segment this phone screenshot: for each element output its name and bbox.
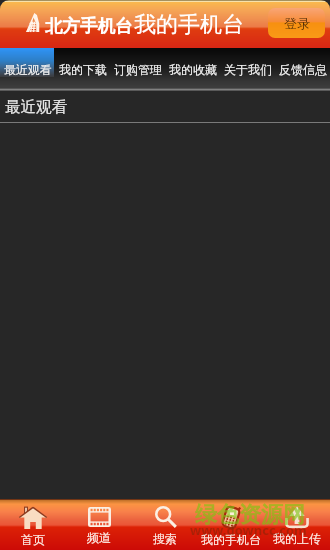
staticText: 订购管理 — [114, 62, 162, 77]
button[interactable]: 我的收藏 — [165, 48, 220, 91]
staticText: 反馈信息 — [279, 62, 327, 77]
button[interactable]: 订购管理 — [110, 48, 165, 91]
staticText: 频道 — [87, 530, 111, 545]
button[interactable]: 登录 — [268, 8, 325, 38]
staticText: 绿色资源网 — [195, 501, 305, 529]
button[interactable]: 我的下载 — [55, 48, 110, 91]
staticText: 最近观看 — [4, 62, 52, 77]
button[interactable]: 首页 — [0, 499, 66, 550]
staticText: www.downcc.com — [190, 521, 307, 539]
staticText: 我的收藏 — [169, 62, 217, 77]
other: 我的上传 — [285, 506, 309, 528]
staticText: 关于我们 — [224, 62, 272, 77]
button[interactable]: 我的上传 — [264, 499, 330, 550]
other: 频道 — [88, 507, 111, 527]
staticText: 搜索 — [153, 531, 177, 546]
other: 首页 — [19, 506, 47, 529]
staticText: 我的手机台 — [134, 11, 244, 39]
staticText: 我的下载 — [59, 62, 107, 77]
button[interactable]: 关于我们 — [220, 48, 275, 91]
other: 我的手机台 — [220, 506, 242, 529]
staticText: 我的手机台 — [201, 532, 261, 547]
staticText: 登录 — [284, 15, 310, 31]
button[interactable]: 反馈信息 — [275, 48, 330, 91]
staticText: 最近观看 — [5, 97, 67, 117]
staticText: 首页 — [21, 532, 45, 547]
button[interactable]: 最近观看 — [0, 48, 55, 91]
button[interactable]: 频道 — [66, 499, 132, 550]
other: 搜索 — [154, 506, 177, 528]
button[interactable]: 搜索 — [132, 499, 198, 550]
staticText: 我的上传 — [273, 531, 321, 546]
button[interactable]: 我的手机台 — [198, 499, 264, 550]
staticText: 北方手机台 — [45, 15, 133, 37]
